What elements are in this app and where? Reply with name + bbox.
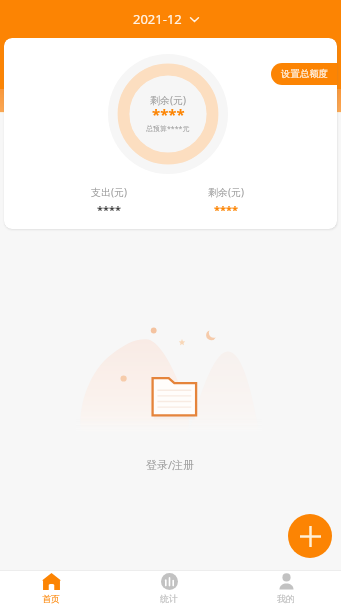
staticText: 总预算****元: [146, 124, 190, 134]
staticText: 剩余(元): [208, 185, 244, 199]
button[interactable]: 支出(元): [74, 185, 143, 217]
staticText: 设置总额度: [281, 68, 328, 80]
staticText: 我的: [277, 593, 295, 604]
staticText: ****: [97, 202, 121, 217]
button[interactable]: 我的: [251, 571, 321, 606]
staticText: 登录/注册: [146, 457, 195, 472]
button[interactable]: 首页: [16, 571, 86, 606]
staticText: 剩余(元): [150, 93, 186, 107]
staticText: 支出(元): [91, 185, 127, 199]
button[interactable]: 2021-12: [133, 10, 199, 28]
button[interactable]: Add record: [288, 514, 332, 558]
button[interactable]: 统计: [134, 571, 204, 606]
staticText: ****: [214, 202, 238, 217]
staticText: ****: [152, 104, 185, 124]
button[interactable]: 设置总额度: [271, 63, 337, 85]
staticText: 统计: [160, 593, 178, 604]
button[interactable]: 剩余(元): [191, 185, 260, 217]
staticText: 2021-12: [133, 10, 182, 28]
button[interactable]: 登录/注册: [140, 455, 201, 474]
staticText: 首页: [42, 593, 60, 604]
